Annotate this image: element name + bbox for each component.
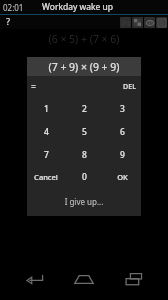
button[interactable]: 3 (103, 97, 141, 120)
button[interactable]: Cancel (27, 166, 65, 187)
button[interactable]: 9 (103, 143, 141, 166)
button[interactable]: Home (69, 264, 99, 294)
button[interactable]: Sleep (144, 17, 155, 28)
staticText: (8 + 9) × (7 + 7) (0, 55, 168, 69)
button[interactable]: Help (2, 16, 14, 28)
staticText: DEL (123, 82, 136, 92)
staticText: 9 (120, 149, 125, 161)
staticText: = (31, 81, 36, 93)
button[interactable]: 0 (65, 166, 103, 187)
button[interactable]: OK (103, 166, 141, 187)
button[interactable]: I give up... (27, 187, 141, 216)
staticText: 5 (82, 126, 87, 138)
button[interactable]: Pattern puzzle (132, 17, 143, 28)
staticText: (7 + 9) × (9 + 9) (27, 60, 141, 74)
button[interactable]: 4 (27, 120, 65, 143)
staticText: ? (6, 16, 10, 28)
staticText: 2 (82, 103, 87, 115)
button[interactable]: Recent apps (119, 264, 149, 294)
button[interactable]: 5 (65, 120, 103, 143)
button[interactable]: Math puzzle (120, 17, 131, 28)
staticText: 1 (44, 103, 49, 115)
button[interactable]: Settings (156, 17, 167, 28)
button[interactable]: 1 (27, 97, 65, 120)
staticText: 02:01 (3, 2, 24, 13)
button[interactable]: 2 (65, 97, 103, 120)
button[interactable]: 6 (103, 120, 141, 143)
staticText: (6 × 5) + (7 × 6) (0, 32, 168, 46)
staticText: 4 (44, 126, 49, 138)
button[interactable]: Back (20, 264, 50, 294)
button[interactable]: 8 (65, 143, 103, 166)
staticText: OK (117, 172, 128, 182)
staticText: 8 (82, 149, 87, 161)
staticText: Cancel (34, 172, 58, 182)
button[interactable]: 7 (27, 143, 65, 166)
staticText: 6 (120, 126, 125, 138)
staticText: 3 (120, 103, 125, 115)
staticText: I give up... (27, 196, 141, 207)
staticText: 7 (44, 149, 49, 161)
button[interactable]: DEL (123, 82, 136, 92)
button[interactable]: Answer (31, 79, 47, 95)
staticText: 0 (82, 171, 87, 183)
staticText: 2+2 (122, 20, 130, 26)
staticText: Workday wake up (42, 1, 113, 13)
